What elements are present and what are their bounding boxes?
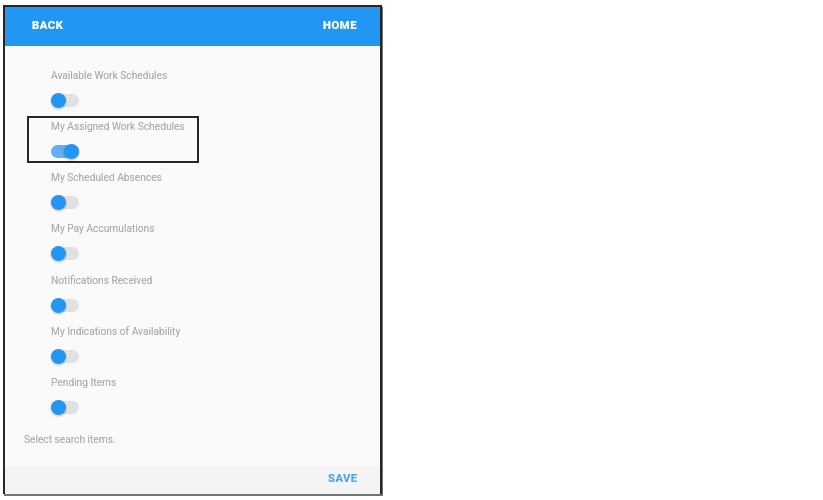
staticText: HOME: [323, 19, 358, 32]
staticText: Available Work Schedules: [51, 70, 168, 82]
staticText: SAVE: [328, 472, 358, 485]
button[interactable]: Available Work Schedules: [27, 65, 199, 112]
other: Off: [50, 348, 80, 365]
other: Off: [50, 399, 80, 416]
staticText: Select search items.: [24, 434, 116, 446]
button[interactable]: Pending Items: [27, 372, 199, 419]
button[interactable]: My Indications of Availability: [27, 321, 199, 368]
staticText: My Scheduled Absences: [51, 172, 162, 184]
other: Off: [50, 194, 80, 211]
button[interactable]: My Scheduled Absences: [27, 167, 199, 214]
staticText: Pending Items: [51, 377, 117, 389]
button[interactable]: HOME: [302, 19, 380, 35]
staticText: BACK: [32, 19, 64, 32]
other: Off: [50, 245, 80, 262]
button[interactable]: SAVE: [309, 472, 380, 488]
button[interactable]: My Pay Accumulations: [27, 218, 199, 265]
staticText: My Assigned Work Schedules: [51, 121, 185, 133]
other: Off: [50, 297, 80, 314]
button[interactable]: My Assigned Work Schedules: [27, 116, 199, 163]
staticText: My Pay Accumulations: [51, 223, 155, 235]
staticText: My Indications of Availability: [51, 326, 181, 338]
other: Off: [50, 92, 80, 109]
button[interactable]: BACK: [5, 19, 91, 35]
other: On: [50, 143, 80, 160]
staticText: Notifications Received: [51, 275, 153, 287]
button[interactable]: Notifications Received: [27, 270, 199, 317]
